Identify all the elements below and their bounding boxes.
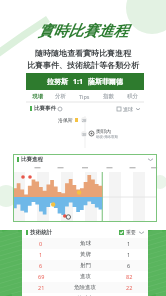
staticText: 危險進攻 — [74, 284, 96, 291]
staticText: 實時比賽進程 — [38, 22, 128, 41]
button[interactable]: 分析 — [49, 90, 72, 102]
button[interactable]: 技術統計 — [22, 226, 148, 238]
staticText: 6 — [127, 262, 131, 269]
staticText: 6 — [39, 262, 43, 269]
staticText: 奧耶內 — [96, 128, 111, 134]
staticText: 拉努斯 — [47, 77, 68, 86]
button[interactable]: 比賽事件 — [26, 103, 144, 114]
button[interactable]: Tips — [72, 90, 96, 102]
staticText: 比賽事件 — [34, 105, 56, 112]
button[interactable]: 比賽進程 — [13, 154, 157, 222]
staticText: 角球 — [80, 240, 91, 247]
button[interactable]: 0 — [22, 238, 148, 249]
staticText: 比賽進程 — [21, 156, 43, 163]
staticText: 1 — [39, 251, 43, 258]
staticText: 控球率 — [77, 295, 94, 296]
staticText: 射門 — [80, 262, 91, 269]
staticText: 1 — [127, 251, 131, 258]
button[interactable]: 現場 — [26, 90, 49, 102]
button[interactable]: 积分 — [120, 90, 144, 102]
staticText: 指數 — [103, 93, 114, 100]
staticText: 進攻 — [80, 273, 91, 280]
staticText: 洛佩斯 — [58, 117, 73, 123]
button[interactable]: 指數 — [96, 90, 120, 102]
button[interactable]: 21 — [22, 282, 148, 293]
staticText: 69 — [38, 273, 45, 280]
button[interactable]: 42% — [22, 293, 148, 296]
staticText: 隨時隨地查看實時比賽進程 — [35, 48, 131, 58]
staticText: Tips — [79, 93, 90, 100]
button[interactable]: 拉努斯 — [26, 73, 144, 90]
staticText: 助攻:弗洛雷斯 — [96, 134, 118, 139]
staticText: 分析 — [55, 93, 66, 100]
button[interactable]: 1 — [22, 249, 148, 260]
staticText: 現場 — [32, 93, 43, 100]
staticText: 0 — [39, 240, 43, 247]
staticText: 82 — [126, 273, 133, 280]
staticText: 28 — [82, 118, 87, 123]
staticText: 重要 — [126, 229, 136, 235]
staticText: 1 — [127, 240, 131, 247]
staticText: 22 — [126, 284, 133, 291]
button[interactable]: 69 — [22, 271, 148, 282]
staticText: 進球 — [123, 106, 133, 112]
staticText: 30 — [82, 132, 87, 137]
button[interactable]: 6 — [22, 260, 148, 271]
staticText: 黃牌 — [80, 251, 91, 258]
staticText: 积分 — [127, 93, 138, 100]
staticText: 1:1 — [73, 77, 83, 87]
staticText: 比賽事件、技術統計等各類分析 — [27, 60, 139, 70]
staticText: 技術統計 — [30, 229, 52, 236]
staticText: 21 — [38, 284, 45, 291]
staticText: 薩斯菲爾德 — [88, 77, 123, 86]
